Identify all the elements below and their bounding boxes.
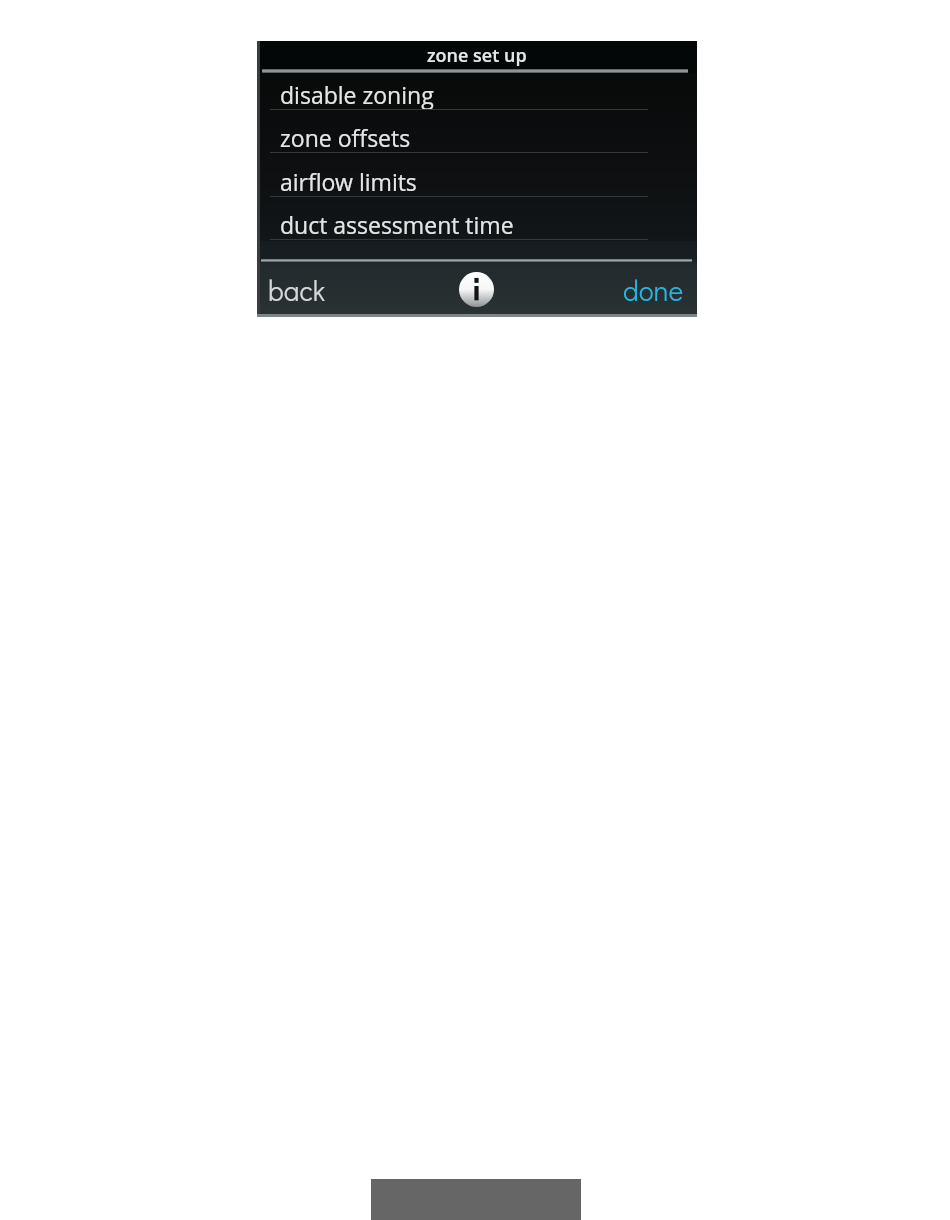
- staticText: disable zoning: [280, 79, 434, 110]
- staticText: airflow limits: [280, 166, 417, 197]
- button[interactable]: airflow limits: [257, 154, 697, 197]
- button[interactable]: Information: [403, 264, 550, 317]
- staticText: zone offsets: [280, 122, 411, 153]
- staticText: back: [268, 272, 325, 309]
- staticText: duct assessment time: [280, 209, 514, 240]
- button[interactable]: disable zoning: [257, 71, 697, 110]
- button[interactable]: duct assessment time: [257, 197, 697, 240]
- button[interactable]: done: [550, 264, 697, 317]
- button[interactable]: zone offsets: [257, 110, 697, 153]
- button[interactable]: back: [257, 264, 403, 317]
- staticText: zone set up: [427, 43, 527, 68]
- staticText: done: [623, 272, 684, 309]
